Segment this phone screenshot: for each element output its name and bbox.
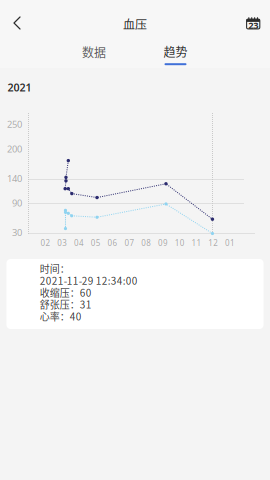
staticText: 05 <box>91 238 101 248</box>
staticText: 11 <box>191 238 201 248</box>
staticText: 200 <box>7 143 22 155</box>
staticText: 01 <box>225 238 235 248</box>
staticText: 07 <box>124 238 134 248</box>
staticText: 09 <box>158 238 168 248</box>
button[interactable]: 数据 <box>66 38 122 66</box>
staticText: 140 <box>7 172 22 184</box>
button[interactable]: Back <box>3 8 37 38</box>
staticText: 时间： <box>40 261 70 276</box>
staticText: 12 <box>208 238 218 248</box>
staticText: 心率：40 <box>40 309 82 323</box>
staticText: 血压 <box>123 15 147 33</box>
staticText: 2021 <box>8 80 32 94</box>
staticText: 数据 <box>82 43 106 61</box>
staticText: 04 <box>74 238 84 248</box>
staticText: 收缩压：60 <box>40 285 92 300</box>
staticText: 06 <box>108 238 118 248</box>
staticText: 08 <box>141 238 151 248</box>
staticText: 2021-11-29 12:34:00 <box>40 273 138 288</box>
staticText: 250 <box>7 118 22 130</box>
button[interactable]: 趋势 <box>147 40 203 68</box>
staticText: 02 <box>40 238 50 248</box>
button[interactable]: Calendar <box>238 9 268 37</box>
staticText: 趋势 <box>163 43 187 60</box>
staticText: 23 <box>248 19 258 31</box>
staticText: 90 <box>12 197 22 209</box>
staticText: 30 <box>12 226 22 239</box>
staticText: 舒张压：31 <box>40 297 92 311</box>
staticText: 03 <box>57 238 67 248</box>
staticText: 10 <box>175 238 185 248</box>
